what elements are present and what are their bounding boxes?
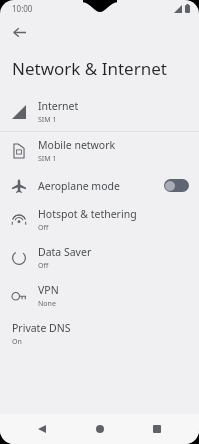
staticText: Network & Internet [12, 57, 167, 80]
button[interactable]: Back [27, 414, 57, 444]
staticText: SIM 1 [38, 154, 57, 164]
button[interactable]: Internet [0, 93, 199, 131]
button[interactable]: VPN [0, 277, 199, 315]
staticText: Off [38, 223, 49, 233]
staticText: On [12, 337, 22, 347]
button[interactable]: Recents [142, 414, 172, 444]
staticText: Mobile network [38, 138, 116, 152]
button[interactable]: Aeroplane mode [0, 170, 199, 201]
staticText: Hotspot & tethering [38, 207, 137, 221]
button[interactable]: Private DNS [0, 315, 199, 353]
staticText: Private DNS [12, 321, 71, 335]
button[interactable]: Data Saver [0, 239, 199, 277]
button[interactable]: Back [6, 19, 32, 45]
staticText: Internet [38, 99, 79, 113]
staticText: None [38, 299, 56, 309]
staticText: Data Saver [38, 245, 92, 259]
staticText: VPN [38, 283, 59, 297]
button[interactable]: Aeroplane mode toggle [164, 179, 189, 192]
staticText: Off [38, 261, 49, 271]
button[interactable]: Home [85, 414, 115, 444]
button[interactable]: Mobile network [0, 132, 199, 170]
button[interactable]: Hotspot & tethering [0, 201, 199, 239]
staticText: 10:00 [12, 3, 33, 14]
staticText: Aeroplane mode [38, 179, 120, 193]
staticText: SIM 1 [38, 115, 57, 125]
